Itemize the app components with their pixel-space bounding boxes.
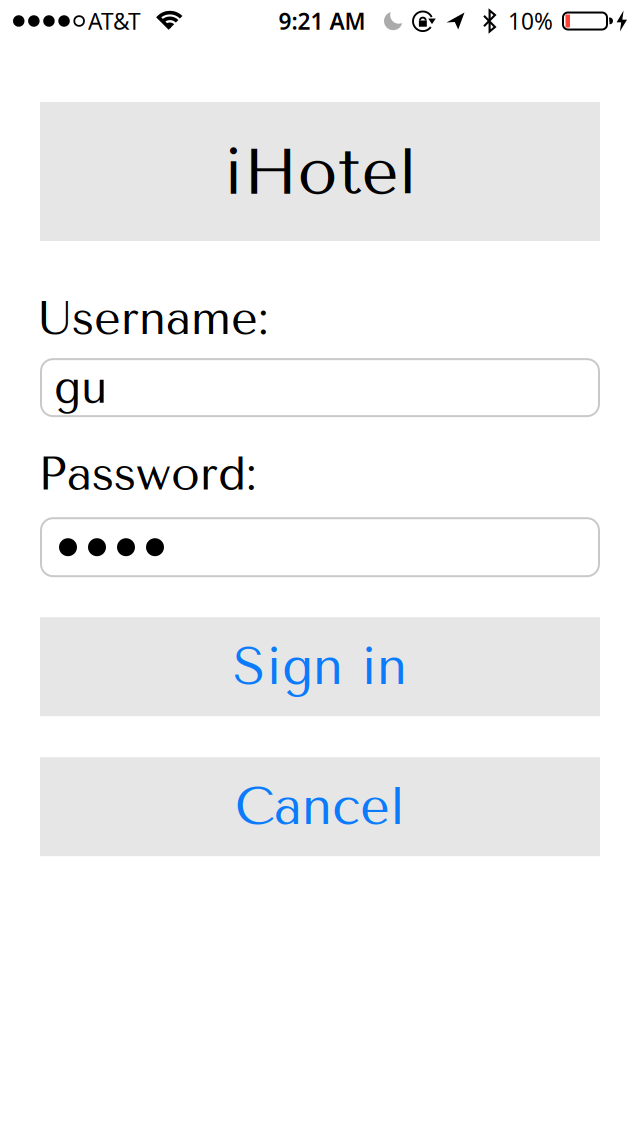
button[interactable]: Sign in	[40, 617, 600, 716]
button[interactable]: Password text field	[40, 517, 600, 577]
staticText: 9:21 AM	[278, 6, 365, 36]
staticText: gu	[54, 361, 107, 414]
button[interactable]: Username text field	[40, 358, 600, 417]
staticText: 10%	[508, 6, 553, 36]
staticText: Sign in	[233, 636, 407, 697]
staticText: Password:	[38, 447, 257, 501]
staticText: Username:	[38, 291, 269, 346]
staticText: Cancel	[235, 776, 405, 837]
staticText: iHotel	[223, 134, 416, 209]
staticText: AT&T	[88, 6, 141, 36]
button[interactable]: Cancel	[40, 757, 600, 856]
